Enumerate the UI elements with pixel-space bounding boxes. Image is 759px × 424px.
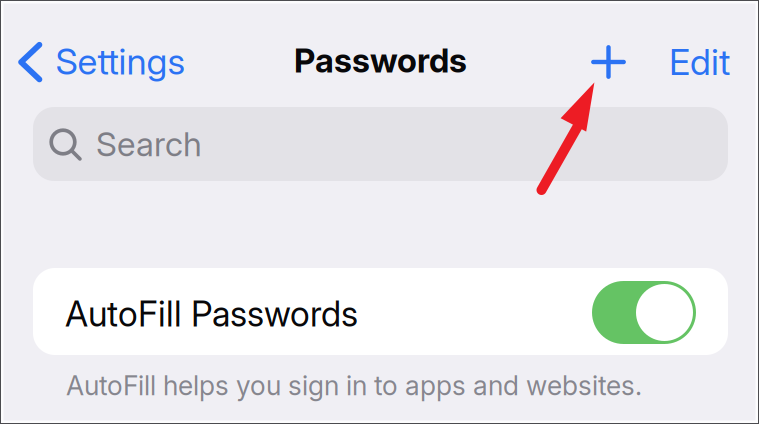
staticText: Edit [669,40,730,84]
button[interactable]: AutoFill Passwords, on [592,281,696,344]
staticText: Settings [56,39,186,83]
button[interactable]: Settings [18,30,198,92]
staticText: AutoFill helps you sign in to apps and w… [66,369,642,402]
staticText: AutoFill Passwords [65,293,358,335]
button[interactable]: Edit [657,31,745,93]
button[interactable]: Search [33,107,728,181]
staticText: Search [96,124,202,164]
button[interactable]: Add Password [574,31,643,93]
staticText: Passwords [294,40,467,81]
